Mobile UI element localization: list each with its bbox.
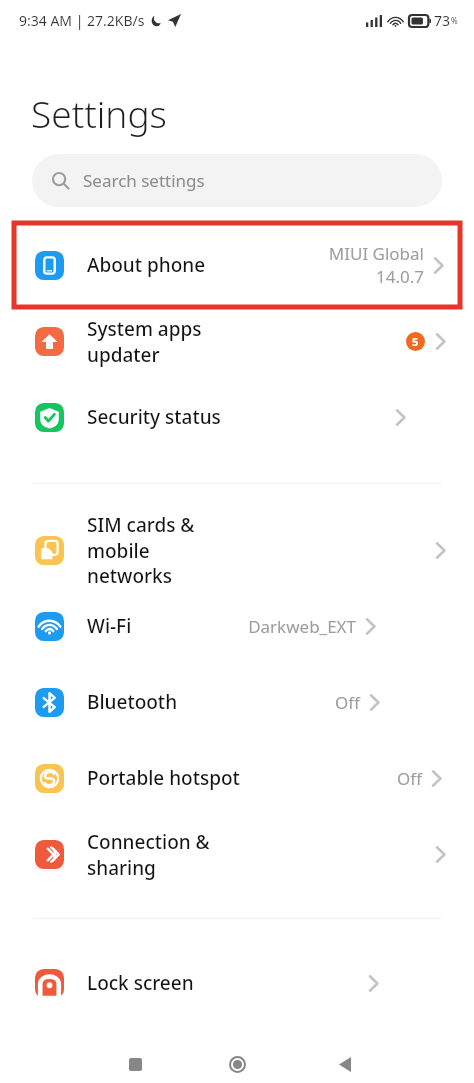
button[interactable]: Wi-Fi (0, 588, 474, 664)
button[interactable]: Security status (0, 379, 474, 455)
staticText: System apps updater (87, 316, 246, 367)
staticText: % (451, 15, 458, 26)
staticText: SIM cards & mobile networks (87, 512, 261, 588)
staticText: MIUI Global 14.0.7 (328, 242, 424, 288)
button[interactable]: Lock screen (0, 945, 474, 1021)
button[interactable]: Connection & sharing (0, 816, 474, 892)
staticText: Bluetooth (87, 689, 178, 715)
staticText: 5 (412, 334, 419, 349)
staticText: Connection & sharing (87, 829, 261, 880)
staticText: Security status (87, 404, 221, 430)
button[interactable]: SIM cards & mobile networks (0, 512, 474, 588)
staticText: Search settings (83, 169, 205, 192)
staticText: Settings (31, 88, 167, 138)
staticText: Portable hotspot (87, 765, 240, 791)
button[interactable]: Bluetooth (0, 664, 474, 740)
staticText: Wi-Fi (87, 613, 132, 639)
staticText: About phone (87, 252, 206, 278)
button[interactable]: Portable hotspot (0, 740, 474, 816)
staticText: 73 (434, 11, 451, 30)
button[interactable]: About phone (0, 227, 474, 303)
button[interactable]: Home (220, 1047, 254, 1081)
staticText: Lock screen (87, 970, 194, 996)
button[interactable]: System apps updater (0, 303, 474, 379)
staticText: Off (335, 691, 360, 714)
staticText: 9:34 AM | 27.2KB/s (19, 11, 145, 30)
staticText: Off (397, 767, 422, 790)
button[interactable]: Search settings (32, 154, 442, 207)
button[interactable]: Recent apps (118, 1047, 152, 1081)
button[interactable]: Back (328, 1047, 362, 1081)
staticText: Darkweb_EXT (248, 615, 356, 638)
